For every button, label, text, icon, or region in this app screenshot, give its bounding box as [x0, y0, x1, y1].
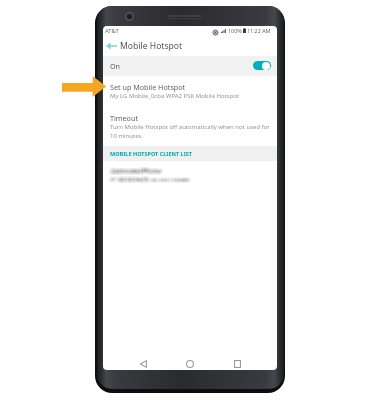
staticText: 01:02:03:04:05 xx.xxx.xxx.xxx	[110, 176, 188, 184]
staticText: Turn Mobile Hotspot off automatically wh…	[110, 123, 272, 140]
staticText: 01:02:03:04:05 xx.xxx.xxx.xxx	[111, 175, 189, 183]
staticText: SomeonesPhone	[111, 166, 162, 175]
staticText: 01:02:03:04:05 xx.xxx.xxx.xxx	[110, 174, 188, 182]
staticText: SomeonesPhone	[112, 167, 163, 176]
staticText: SomeonesPhone	[112, 166, 163, 175]
button[interactable]: Back	[127, 357, 159, 370]
staticText: SomeonesPhone	[111, 168, 162, 177]
staticText: SomeonesPhone	[109, 165, 160, 174]
staticText: SomeonesPhone	[109, 168, 160, 177]
staticText: SomeonesPhone	[111, 168, 162, 177]
staticText: SomeonesPhone	[112, 167, 163, 176]
staticText: Timeout	[110, 113, 139, 123]
button[interactable]: Recent apps	[221, 357, 253, 370]
staticText: SomeonesPhone	[113, 167, 164, 176]
staticText: 01:02:03:04:05 xx.xxx.xxx.xxx	[109, 176, 187, 184]
staticText: 01:02:03:04:05 xx.xxx.xxx.xxx	[110, 176, 188, 184]
staticText: 01:02:03:04:05 xx.xxx.xxx.xxx	[112, 176, 190, 184]
staticText: SomeonesPhone	[113, 166, 164, 175]
staticText: 01:02:03:04:05 xx.xxx.xxx.xxx	[112, 177, 190, 185]
staticText: SomeonesPhone	[109, 165, 160, 174]
staticText: SomeonesPhone	[110, 165, 161, 174]
staticText: 01:02:03:04:05 xx.xxx.xxx.xxx	[111, 177, 189, 185]
staticText: SomeonesPhone	[110, 167, 161, 176]
staticText: 01:02:03:04:05 xx.xxx.xxx.xxx	[113, 177, 191, 185]
staticText: SomeonesPhone	[113, 168, 164, 177]
staticText: SomeonesPhone	[110, 168, 161, 177]
staticText: 01:02:03:04:05 xx.xxx.xxx.xxx	[112, 175, 190, 183]
staticText: 01:02:03:04:05 xx.xxx.xxx.xxx	[110, 176, 188, 184]
staticText: 01:02:03:04:05 xx.xxx.xxx.xxx	[110, 175, 188, 183]
staticText: 01:02:03:04:05 xx.xxx.xxx.xxx	[111, 174, 189, 182]
staticText: 01:02:03:04:05 xx.xxx.xxx.xxx	[109, 177, 187, 185]
button[interactable]: Set up Mobile Hotspot	[103, 78, 277, 104]
staticText: SomeonesPhone	[108, 167, 159, 176]
staticText: SomeonesPhone	[110, 167, 161, 176]
staticText: SomeonesPhone	[110, 168, 161, 177]
staticText: 01:02:03:04:05 xx.xxx.xxx.xxx	[113, 174, 191, 182]
staticText: 01:02:03:04:05 xx.xxx.xxx.xxx	[112, 176, 190, 184]
staticText: SomeonesPhone	[111, 165, 162, 174]
staticText: 01:02:03:04:05 xx.xxx.xxx.xxx	[111, 176, 189, 184]
staticText: SomeonesPhone	[110, 167, 161, 176]
staticText: 01:02:03:04:05 xx.xxx.xxx.xxx	[109, 177, 187, 185]
staticText: SomeonesPhone	[113, 168, 164, 177]
staticText: SomeonesPhone	[110, 167, 161, 176]
staticText: Mobile Hotspot	[120, 40, 183, 52]
staticText: SomeonesPhone	[108, 165, 159, 174]
staticText: SomeonesPhone	[113, 166, 164, 175]
staticText: SomeonesPhone	[110, 167, 161, 176]
staticText: MOBILE HOTSPOT CLIENT LIST	[110, 150, 193, 157]
staticText: 01:02:03:04:05 xx.xxx.xxx.xxx	[110, 174, 188, 182]
button[interactable]: Home	[174, 357, 206, 370]
staticText: SomeonesPhone	[113, 166, 164, 175]
button[interactable]: Navigate up	[103, 35, 119, 56]
staticText: 01:02:03:04:05 xx.xxx.xxx.xxx	[112, 177, 190, 185]
staticText: SomeonesPhone	[112, 165, 163, 174]
staticText: 01:02:03:04:05 xx.xxx.xxx.xxx	[110, 176, 188, 184]
staticText: SomeonesPhone	[112, 168, 163, 177]
staticText: SomeonesPhone	[112, 165, 163, 174]
staticText: 01:02:03:04:05 xx.xxx.xxx.xxx	[110, 176, 188, 184]
staticText: 01:02:03:04:05 xx.xxx.xxx.xxx	[113, 174, 191, 182]
staticText: SomeonesPhone	[110, 165, 161, 174]
staticText: 01:02:03:04:05 xx.xxx.xxx.xxx	[109, 174, 187, 182]
staticText: 01:02:03:04:05 xx.xxx.xxx.xxx	[112, 174, 190, 182]
staticText: SomeonesPhone	[110, 168, 161, 177]
staticText: SomeonesPhone	[112, 167, 163, 176]
staticText: On	[110, 61, 121, 71]
staticText: SomeonesPhone	[109, 165, 160, 174]
button[interactable]: On	[103, 56, 277, 76]
staticText: 01:02:03:04:05 xx.xxx.xxx.xxx	[109, 177, 187, 185]
staticText: 01:02:03:04:05 xx.xxx.xxx.xxx	[112, 174, 190, 182]
staticText: 01:02:03:04:05 xx.xxx.xxx.xxx	[112, 176, 190, 184]
staticText: SomeonesPhone	[110, 165, 161, 174]
staticText: 01:02:03:04:05 xx.xxx.xxx.xxx	[109, 177, 187, 185]
staticText: 01:02:03:04:05 xx.xxx.xxx.xxx	[111, 176, 189, 184]
staticText: 01:02:03:04:05 xx.xxx.xxx.xxx	[113, 176, 191, 184]
staticText: SomeonesPhone	[110, 168, 161, 177]
staticText: SomeonesPhone	[108, 167, 159, 176]
staticText: SomeonesPhone	[109, 166, 160, 175]
staticText: 01:02:03:04:05 xx.xxx.xxx.xxx	[110, 174, 188, 182]
staticText: 01:02:03:04:05 xx.xxx.xxx.xxx	[108, 176, 186, 184]
staticText: 01:02:03:04:05 xx.xxx.xxx.xxx	[112, 176, 190, 184]
staticText: SomeonesPhone	[112, 166, 163, 175]
staticText: SomeonesPhone	[113, 166, 164, 175]
staticText: SomeonesPhone	[110, 166, 161, 175]
staticText: 01:02:03:04:05 xx.xxx.xxx.xxx	[110, 177, 188, 185]
staticText: SomeonesPhone	[111, 166, 162, 175]
button[interactable]: Timeout	[103, 109, 277, 144]
staticText: SomeonesPhone	[113, 168, 164, 177]
staticText: 01:02:03:04:05 xx.xxx.xxx.xxx	[109, 175, 187, 183]
staticText: SomeonesPhone	[110, 166, 161, 175]
staticText: 01:02:03:04:05 xx.xxx.xxx.xxx	[112, 175, 190, 183]
staticText: SomeonesPhone	[111, 165, 162, 174]
staticText: 100%	[228, 27, 242, 34]
staticText: SomeonesPhone	[112, 166, 163, 175]
staticText: 01:02:03:04:05 xx.xxx.xxx.xxx	[111, 174, 189, 182]
staticText: 01:02:03:04:05 xx.xxx.xxx.xxx	[108, 177, 186, 185]
staticText: SomeonesPhone	[112, 168, 163, 177]
staticText: SomeonesPhone	[112, 167, 163, 176]
staticText: SomeonesPhone	[113, 165, 164, 174]
